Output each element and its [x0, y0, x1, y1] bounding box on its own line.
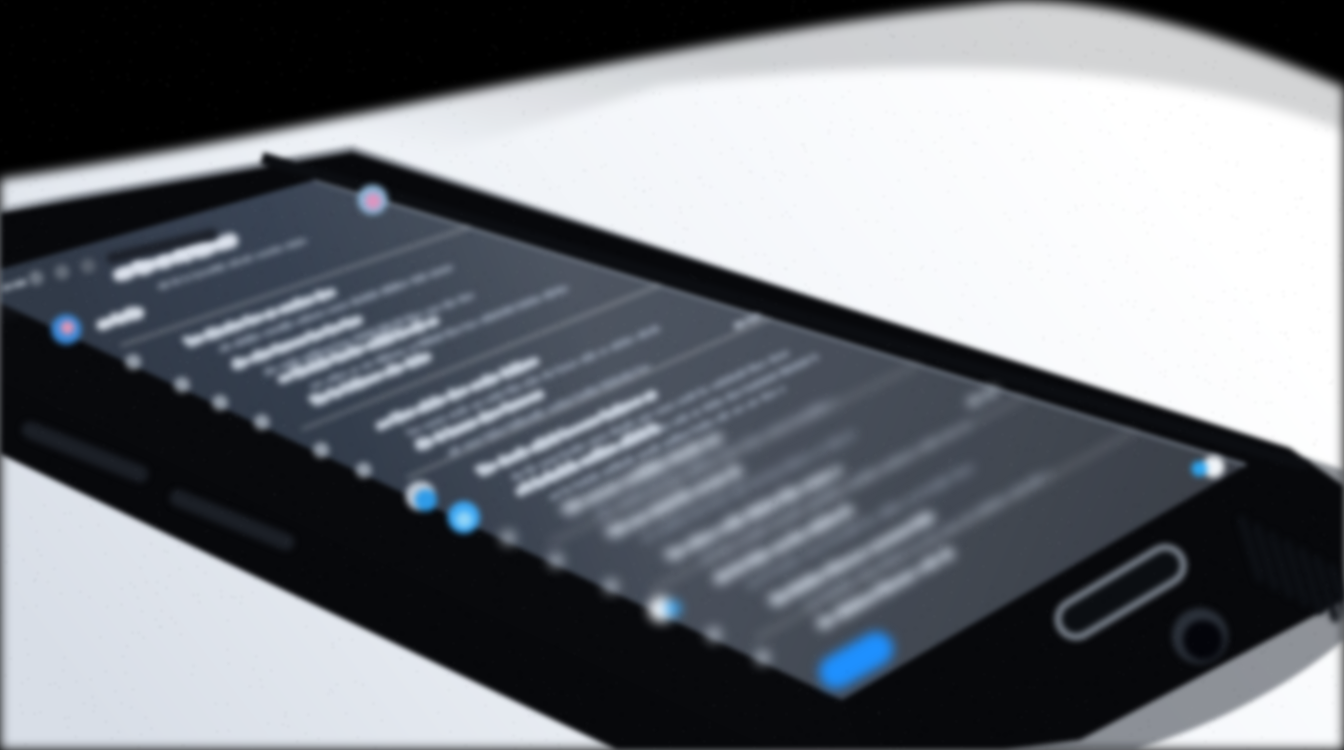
- button[interactable]: [0, 0, 1344, 750]
- button[interactable]: Notifications: [560, 440, 1120, 700]
- button[interactable]: Sounds and vibration: [330, 380, 930, 640]
- button[interactable]: Settings title: [0, 170, 440, 360]
- button[interactable]: Account: [40, 250, 420, 440]
- button[interactable]: Display: [760, 500, 1250, 730]
- button[interactable]: Charging port: [1080, 500, 1260, 660]
- other: Phone settings screen: [0, 0, 1344, 750]
- button[interactable]: Connections: [120, 300, 700, 560]
- button[interactable]: Toggle: [790, 580, 900, 690]
